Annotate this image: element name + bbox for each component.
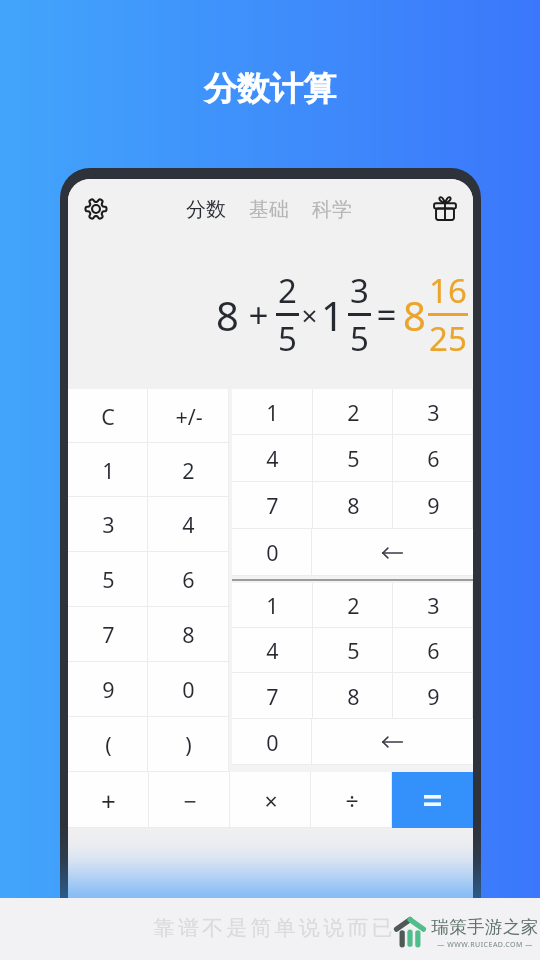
button[interactable]: 3: [393, 389, 473, 435]
staticText: 16: [429, 268, 467, 313]
button[interactable]: ÷: [311, 772, 392, 828]
staticText: 7: [266, 491, 279, 520]
staticText: ÷: [345, 785, 359, 816]
staticText: 1: [266, 591, 279, 620]
button[interactable]: Settings: [73, 186, 119, 232]
button[interactable]: (: [68, 717, 148, 772]
button[interactable]: +/-: [148, 389, 229, 443]
staticText: 8: [347, 491, 360, 520]
staticText: +/-: [175, 402, 203, 431]
staticText: 9: [427, 491, 440, 520]
staticText: ×: [301, 296, 318, 334]
staticText: 2: [182, 456, 195, 485]
button[interactable]: 8: [313, 673, 393, 719]
staticText: 9: [102, 675, 115, 704]
staticText: 4: [182, 510, 195, 539]
staticText: C: [101, 402, 115, 431]
staticText: 2: [347, 591, 360, 620]
button[interactable]: 9: [68, 662, 148, 717]
staticText: 分数: [186, 197, 226, 222]
staticText: 1: [266, 398, 279, 427]
staticText: 0: [266, 538, 279, 567]
staticText: 3: [427, 398, 440, 427]
button[interactable]: ): [148, 717, 229, 772]
staticText: 5: [350, 316, 369, 361]
button[interactable]: 6: [393, 435, 473, 482]
staticText: =: [376, 291, 397, 339]
button[interactable]: 1: [232, 389, 313, 435]
staticText: 8: [347, 682, 360, 711]
button[interactable]: 4: [232, 628, 313, 673]
button[interactable]: 9: [393, 673, 473, 719]
button[interactable]: 1: [232, 583, 313, 628]
staticText: 1: [321, 288, 344, 342]
button[interactable]: 科学: [312, 191, 352, 228]
button[interactable]: 1: [68, 443, 148, 497]
button[interactable]: 2: [313, 583, 393, 628]
button[interactable]: 5: [68, 552, 148, 607]
button[interactable]: 4: [232, 435, 313, 482]
button[interactable]: Equals: [392, 772, 473, 828]
staticText: 0: [182, 675, 195, 704]
button[interactable]: 5: [313, 435, 393, 482]
staticText: 分数计算: [204, 68, 336, 110]
button[interactable]: 4: [148, 497, 229, 552]
button[interactable]: 7: [232, 673, 313, 719]
staticText: 8: [182, 620, 195, 649]
staticText: 6: [182, 565, 195, 594]
button[interactable]: 7: [68, 607, 148, 662]
button[interactable]: C: [68, 389, 148, 443]
staticText: 靠谱不是简单说说而已: [152, 915, 394, 941]
button[interactable]: 3: [393, 583, 473, 628]
button[interactable]: 0: [232, 529, 312, 576]
staticText: 3: [102, 510, 115, 539]
button[interactable]: 7: [232, 482, 313, 529]
staticText: 7: [102, 620, 115, 649]
button[interactable]: Backspace: [312, 719, 473, 765]
staticText: 25: [429, 316, 467, 361]
staticText: 瑞策手游之家: [431, 916, 539, 938]
button[interactable]: 8: [148, 607, 229, 662]
button[interactable]: +: [68, 772, 149, 828]
button[interactable]: ×: [230, 772, 311, 828]
staticText: 2: [347, 398, 360, 427]
staticText: 科学: [312, 197, 352, 222]
button[interactable]: 8: [313, 482, 393, 529]
staticText: (: [105, 730, 112, 759]
button[interactable]: 分数: [186, 191, 226, 228]
staticText: 2: [278, 268, 297, 313]
staticText: ×: [264, 785, 278, 816]
staticText: 3: [350, 268, 369, 313]
staticText: 5: [102, 565, 115, 594]
staticText: 基础: [249, 197, 289, 222]
button[interactable]: 6: [393, 628, 473, 673]
staticText: — WWW.RUICEAD.COM —: [437, 940, 533, 950]
button[interactable]: 3: [68, 497, 148, 552]
staticText: +: [101, 783, 116, 818]
staticText: 9: [427, 682, 440, 711]
staticText: 3: [427, 591, 440, 620]
staticText: 0: [266, 728, 279, 757]
button[interactable]: 2: [148, 443, 229, 497]
staticText: 5: [347, 636, 360, 665]
button[interactable]: 6: [148, 552, 229, 607]
button[interactable]: 9: [393, 482, 473, 529]
button[interactable]: Backspace: [312, 529, 473, 576]
staticText: ): [185, 730, 192, 759]
staticText: 8: [403, 288, 426, 342]
button[interactable]: 0: [148, 662, 229, 717]
staticText: 5: [347, 444, 360, 473]
staticText: 4: [266, 444, 279, 473]
button[interactable]: 2: [313, 389, 393, 435]
staticText: 4: [266, 636, 279, 665]
button[interactable]: 0: [232, 719, 312, 765]
staticText: 6: [427, 636, 440, 665]
button[interactable]: Gift: [422, 186, 468, 232]
staticText: −: [183, 785, 197, 816]
button[interactable]: 基础: [249, 191, 289, 228]
button[interactable]: −: [149, 772, 230, 828]
staticText: 7: [266, 682, 279, 711]
staticText: +: [248, 291, 269, 339]
button[interactable]: 5: [313, 628, 393, 673]
staticText: 6: [427, 444, 440, 473]
